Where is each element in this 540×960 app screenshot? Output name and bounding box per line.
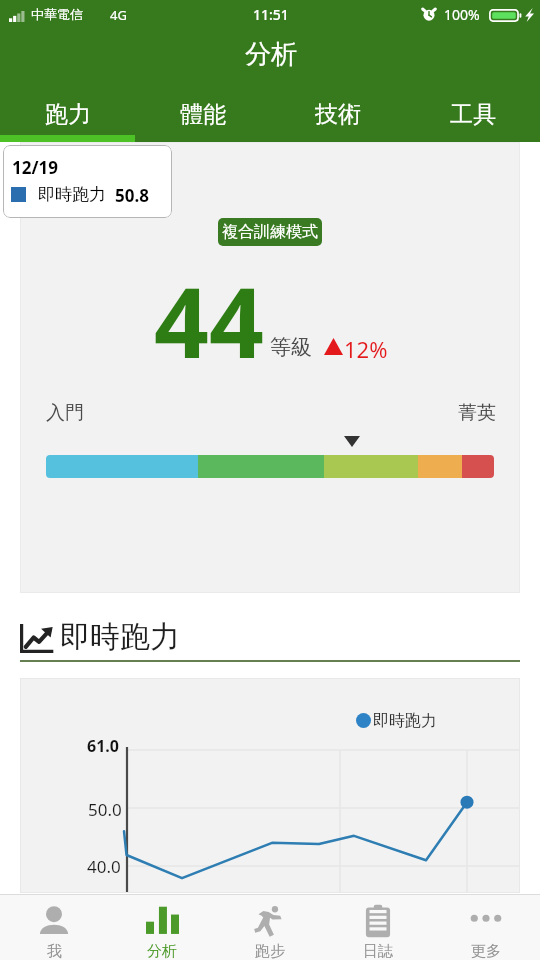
staticText: 複合訓練模式 [222, 222, 318, 242]
staticText: 61.0 [87, 735, 119, 757]
staticText: 更多 [471, 942, 501, 960]
staticText: 中華電信 [31, 6, 83, 22]
staticText: 分析 [147, 942, 177, 960]
staticText: 44 [154, 255, 264, 386]
button[interactable]: 複合訓練模式 [218, 218, 322, 246]
staticText: 即時跑力 [38, 184, 106, 205]
staticText: 50.8 [115, 184, 149, 207]
button[interactable]: 日誌 Log [324, 894, 432, 960]
button[interactable]: 分析 Analysis [108, 894, 216, 960]
staticText: 工具 [450, 100, 496, 129]
staticText: 分析 [245, 38, 297, 71]
button[interactable]: 跑步 Run [216, 894, 324, 960]
staticText: 體能 [180, 100, 226, 129]
staticText: 11:51 [253, 5, 289, 24]
staticText: 50.0 [88, 798, 122, 821]
staticText: 技術 [315, 100, 361, 129]
staticText: 即時跑力 [60, 618, 180, 656]
staticText: 日誌 [363, 942, 393, 960]
staticText: 跑力 [45, 100, 91, 129]
button[interactable]: 我 Profile [0, 894, 108, 960]
staticText: 等級 [270, 334, 312, 360]
button[interactable]: 更多 More [432, 894, 540, 960]
button[interactable]: 技術 [270, 88, 405, 135]
staticText: 12/19 [12, 156, 58, 179]
button[interactable]: 跑力 [0, 88, 135, 135]
staticText: 12% [344, 334, 388, 364]
staticText: 菁英 [458, 401, 496, 425]
button[interactable]: 工具 [405, 88, 540, 135]
staticText: 我 [47, 942, 62, 960]
staticText: 40.0 [87, 855, 121, 878]
staticText: 跑步 [255, 942, 285, 960]
staticText: 4G [110, 6, 127, 24]
staticText: 100% [444, 5, 480, 24]
staticText: 入門 [46, 401, 84, 425]
button[interactable]: 體能 [135, 88, 270, 135]
staticText: 即時跑力 [373, 711, 437, 731]
